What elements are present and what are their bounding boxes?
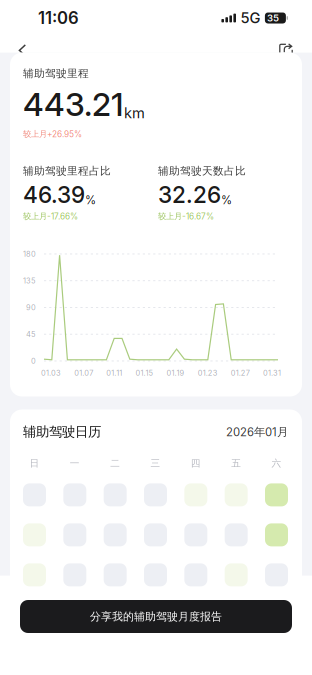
staticText: 五 bbox=[231, 457, 241, 469]
staticText: 01.11 bbox=[106, 368, 122, 377]
staticText: 四 bbox=[191, 457, 201, 469]
staticText: 辅助驾驶天数占比 bbox=[158, 164, 246, 178]
staticText: 01.23 bbox=[198, 368, 218, 377]
staticText: 01.07 bbox=[74, 368, 93, 377]
staticText: 较上月+26.95% bbox=[23, 129, 82, 139]
staticText: 443.21 bbox=[23, 85, 124, 124]
staticText: 日 bbox=[29, 457, 39, 469]
staticText: 01.31 bbox=[263, 368, 281, 377]
staticText: 135 bbox=[23, 276, 36, 285]
staticText: 01.15 bbox=[135, 368, 153, 377]
staticText: 32.26 bbox=[158, 181, 221, 208]
staticText: 分享我的辅助驾驶月度报告 bbox=[90, 610, 222, 623]
staticText: 0 bbox=[31, 356, 36, 365]
staticText: 11:06 bbox=[38, 8, 79, 28]
staticText: 5G bbox=[240, 9, 260, 27]
staticText: 二 bbox=[110, 457, 120, 469]
staticText: % bbox=[221, 193, 232, 207]
staticText: 辅助驾驶里程占比 bbox=[23, 164, 111, 178]
button[interactable]: Back bbox=[5, 36, 39, 65]
staticText: 辅助驾驶日历 bbox=[23, 423, 101, 440]
staticText: 01.03 bbox=[41, 368, 61, 377]
button[interactable]: 分享我的辅助驾驶月度报告 bbox=[20, 600, 292, 633]
staticText: 较上月-16.67% bbox=[158, 211, 214, 221]
staticText: 一 bbox=[70, 457, 80, 469]
staticText: 35 bbox=[267, 12, 279, 24]
staticText: 辅助驾驶里程 bbox=[23, 67, 89, 80]
staticText: 01.19 bbox=[167, 368, 185, 377]
staticText: 90 bbox=[26, 303, 36, 312]
staticText: 2026年01月 bbox=[226, 425, 288, 439]
staticText: 45 bbox=[26, 330, 36, 339]
staticText: 180 bbox=[23, 249, 36, 258]
staticText: 六 bbox=[271, 457, 281, 469]
staticText: km bbox=[124, 104, 145, 122]
staticText: 46.39 bbox=[23, 181, 85, 208]
staticText: % bbox=[85, 193, 96, 207]
button[interactable]: Share bbox=[269, 36, 303, 65]
staticText: 01.27 bbox=[231, 368, 250, 377]
staticText: 三 bbox=[150, 457, 160, 469]
staticText: 较上月-17.66% bbox=[23, 211, 78, 221]
